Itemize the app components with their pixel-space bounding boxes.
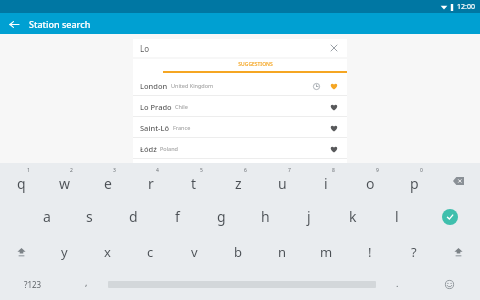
staticText: b (234, 243, 242, 261)
button[interactable]: , (65, 269, 108, 300)
button[interactable]: n (260, 234, 304, 269)
staticText: w (59, 174, 71, 193)
staticText: 7 (288, 167, 291, 174)
button[interactable]: Lörrach (133, 159, 347, 180)
button[interactable]: Favorite (327, 100, 340, 113)
staticText: k (349, 207, 357, 226)
staticText: SUGGESTIONS (238, 61, 273, 68)
staticText: h (261, 207, 270, 226)
staticText: o (366, 174, 375, 193)
staticText: Station search (29, 18, 91, 30)
staticText: v (191, 243, 198, 261)
staticText: n (278, 243, 287, 261)
staticText: y (61, 243, 68, 261)
staticText: t (191, 174, 197, 193)
staticText: 0 (420, 167, 423, 174)
staticText: 4 (156, 167, 159, 174)
staticText: 1 (27, 167, 30, 174)
button[interactable]: 0 (392, 163, 436, 199)
staticText: j (307, 207, 311, 226)
button[interactable]: SUGGESTIONS (163, 59, 347, 75)
staticText: Chile (175, 103, 188, 110)
staticText: Poland (160, 145, 178, 152)
button[interactable]: Favorite (327, 121, 340, 134)
button[interactable]: Done (419, 199, 480, 234)
staticText: i (324, 174, 328, 193)
button[interactable]: d (111, 199, 155, 234)
button[interactable]: l (375, 199, 419, 234)
staticText: s (86, 207, 93, 226)
button[interactable]: 9 (348, 163, 392, 199)
button[interactable]: Shift (0, 234, 43, 269)
staticText: Lörrach (140, 165, 168, 175)
button[interactable]: y (43, 234, 86, 269)
staticText: Saint-Lô (140, 123, 170, 133)
staticText: p (410, 174, 419, 193)
button[interactable]: 4 (129, 163, 172, 199)
button[interactable]: j (287, 199, 331, 234)
button[interactable]: h (243, 199, 287, 234)
staticText: ? (411, 243, 417, 261)
button[interactable]: b (216, 234, 260, 269)
staticText: 8 (332, 167, 335, 174)
staticText: c (147, 243, 154, 261)
staticText: z (235, 174, 242, 193)
button[interactable]: f (155, 199, 199, 234)
button[interactable]: m (304, 234, 348, 269)
button[interactable]: 5 (172, 163, 216, 199)
staticText: London (140, 81, 168, 91)
button[interactable]: k (331, 199, 375, 234)
button[interactable]: Backspace (436, 163, 480, 199)
button[interactable]: x (86, 234, 129, 269)
button[interactable]: ?123 (0, 269, 65, 300)
button[interactable]: Emoji (419, 269, 480, 300)
staticText: , (85, 276, 88, 288)
button[interactable]: 6 (216, 163, 260, 199)
staticText: . (396, 277, 399, 289)
staticText: France (173, 124, 191, 131)
button[interactable]: Lo Prado (133, 96, 347, 117)
button[interactable]: Shift (436, 234, 480, 269)
button[interactable]: g (199, 199, 243, 234)
button[interactable]: Lo (133, 39, 347, 57)
button[interactable]: 8 (304, 163, 348, 199)
button[interactable]: 2 (43, 163, 86, 199)
button[interactable]: v (172, 234, 216, 269)
button[interactable]: Saint-Lô (133, 117, 347, 138)
staticText: l (395, 207, 399, 226)
staticText: 9 (376, 167, 379, 174)
button[interactable]: Clear (326, 40, 342, 56)
button[interactable]: s (68, 199, 111, 234)
staticText: g (217, 207, 226, 226)
staticText: m (320, 243, 333, 261)
button[interactable]: ? (392, 234, 436, 269)
button[interactable]: Space (108, 269, 376, 300)
button[interactable]: Back (6, 16, 22, 32)
button[interactable]: 1 (0, 163, 43, 199)
staticText: 2 (70, 167, 73, 174)
staticText: x (104, 243, 111, 261)
button[interactable]: Favorite (327, 163, 340, 176)
staticText: a (43, 207, 51, 226)
staticText: q (17, 174, 26, 193)
button[interactable]: Recent (310, 80, 322, 92)
staticText: ?123 (24, 279, 42, 290)
staticText: 3 (113, 167, 116, 174)
button[interactable]: London (133, 75, 347, 96)
button[interactable]: c (129, 234, 172, 269)
button[interactable]: Favorite (327, 79, 340, 92)
button[interactable]: Favorite (327, 142, 340, 155)
button[interactable]: Łódź (133, 138, 347, 159)
staticText: 5 (200, 167, 203, 174)
button[interactable]: 3 (86, 163, 129, 199)
button[interactable]: a (25, 199, 68, 234)
button[interactable]: 7 (260, 163, 304, 199)
staticText: Łódź (140, 144, 157, 154)
staticText: 12:00 (457, 2, 475, 12)
staticText: United Kingdom (171, 82, 214, 89)
staticText: u (278, 174, 287, 193)
staticText: f (175, 207, 180, 226)
button[interactable]: ! (348, 234, 392, 269)
